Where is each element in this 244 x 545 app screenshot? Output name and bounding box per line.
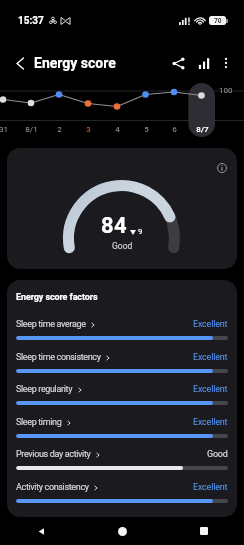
staticText: 9 [138,227,143,236]
staticText: 5 [144,125,149,134]
staticText: Excellent [193,417,228,428]
staticText: Excellent [193,384,228,395]
staticText: Energy score factors [16,292,98,303]
staticText: 31 [0,125,8,134]
staticText: 2 [57,125,62,134]
staticText: Good [112,241,133,251]
staticText: 15:37 [18,15,44,27]
staticText: 8/7 [196,125,209,134]
button[interactable]: Recents [163,517,244,545]
button[interactable]: Back [0,517,82,545]
staticText: Excellent [193,352,228,363]
staticText: Energy score [34,55,116,71]
staticText: Sleep timing [16,417,62,428]
staticText: 70 [214,17,222,25]
staticText: Sleep time consistency [16,352,101,363]
button[interactable]: Back [9,52,32,75]
staticText: Activity consistency [16,482,89,493]
button[interactable]: Sleep timing [16,417,228,445]
staticText: Excellent [193,482,228,493]
button[interactable]: Info [213,159,231,177]
button[interactable]: Home [82,517,163,545]
staticText: Excellent [193,319,228,330]
staticText: 100 [219,86,233,95]
staticText: 3 [86,125,91,134]
button[interactable]: More options [216,53,236,73]
staticText: Sleep time average [16,319,86,330]
button[interactable]: Sleep time consistency [16,352,228,380]
staticText: 4 [115,125,120,134]
staticText: 6 [172,125,177,134]
button[interactable]: Sleep time average [16,319,228,347]
button[interactable]: Statistics [191,51,215,75]
staticText: Good [207,449,228,460]
button[interactable]: Previous day activity [16,449,228,477]
staticText: 8/1 [25,125,38,134]
button[interactable]: Share [166,51,190,75]
staticText: 84 [101,213,128,239]
staticText: Sleep regularity [16,384,73,395]
staticText: Previous day activity [16,449,91,460]
button[interactable]: Sleep regularity [16,384,228,412]
button[interactable]: Activity consistency [16,482,228,510]
